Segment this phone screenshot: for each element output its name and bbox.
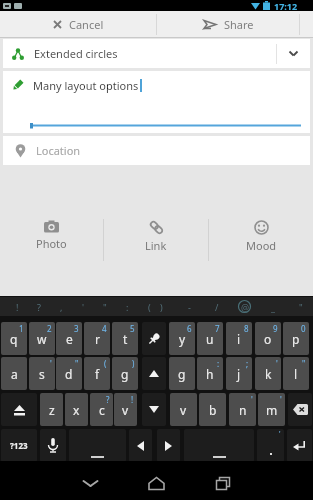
button[interactable]: ? xyxy=(31,299,47,314)
staticText: " xyxy=(75,358,79,369)
button[interactable]: k xyxy=(255,357,281,390)
button[interactable]: e xyxy=(56,322,82,355)
button[interactable]: Location xyxy=(3,136,310,165)
staticText: g xyxy=(178,366,186,382)
button[interactable]: d xyxy=(56,357,82,390)
staticText: d xyxy=(65,366,73,382)
button[interactable]: j xyxy=(226,357,252,390)
staticText: b xyxy=(209,402,217,418)
button[interactable]: " xyxy=(97,299,113,314)
staticText: v xyxy=(122,402,129,418)
button[interactable]: _ xyxy=(265,299,281,314)
button[interactable]: v xyxy=(170,393,197,426)
button[interactable]: Share xyxy=(157,11,299,38)
button[interactable]: ( xyxy=(141,299,157,314)
button[interactable]: s xyxy=(29,357,55,390)
staticText: k xyxy=(265,366,272,382)
button[interactable]: y xyxy=(169,322,195,355)
button[interactable]: Photo xyxy=(0,219,103,261)
button[interactable]: u xyxy=(197,322,223,355)
staticText: 9 xyxy=(273,323,278,334)
button[interactable]: g xyxy=(112,357,138,390)
button[interactable]: , xyxy=(53,299,69,314)
button[interactable]: m xyxy=(258,393,285,426)
staticText: " xyxy=(302,358,306,369)
button[interactable]: @ xyxy=(237,299,253,314)
staticText: f xyxy=(95,366,100,382)
button[interactable]: / xyxy=(209,299,225,314)
button[interactable]: f xyxy=(84,357,110,390)
staticText: ( xyxy=(104,358,107,369)
button[interactable]: : xyxy=(119,299,135,314)
staticText: Cancel xyxy=(69,17,104,32)
button[interactable] xyxy=(184,429,254,462)
button[interactable]: a xyxy=(1,357,27,390)
button[interactable] xyxy=(142,393,166,426)
button[interactable]: x xyxy=(65,393,88,426)
staticText: / xyxy=(215,301,219,313)
staticText: n xyxy=(239,402,247,418)
button[interactable]: Many layout options xyxy=(3,71,310,133)
button[interactable] xyxy=(140,469,172,497)
button[interactable]: o xyxy=(255,322,281,355)
staticText: 2 xyxy=(47,323,52,334)
button[interactable]: h xyxy=(197,357,223,390)
button[interactable]: q xyxy=(1,322,27,355)
button[interactable] xyxy=(207,469,239,497)
button[interactable]: Link xyxy=(104,219,208,261)
staticText: " xyxy=(299,301,303,313)
button[interactable] xyxy=(40,429,66,462)
staticText: 1 xyxy=(19,323,24,334)
button[interactable] xyxy=(129,429,152,462)
staticText: o xyxy=(264,331,272,347)
button[interactable]: ) xyxy=(153,299,169,314)
staticText: j xyxy=(237,366,241,382)
staticText: 6 xyxy=(187,323,192,334)
button[interactable] xyxy=(157,429,180,462)
button[interactable]: ' xyxy=(75,299,91,314)
staticText: s xyxy=(39,366,45,382)
button[interactable]: v xyxy=(114,393,137,426)
staticText: q xyxy=(10,331,18,347)
button[interactable]: b xyxy=(199,393,226,426)
button[interactable]: - xyxy=(181,299,197,314)
button[interactable] xyxy=(142,357,166,390)
button[interactable]: i xyxy=(226,322,252,355)
button[interactable] xyxy=(142,322,166,355)
button[interactable]: w xyxy=(29,322,55,355)
staticText: Mood xyxy=(246,238,277,253)
staticText: c xyxy=(99,402,105,418)
staticText: ' xyxy=(279,429,281,439)
button[interactable]: g xyxy=(169,357,195,390)
staticText: v xyxy=(180,402,187,418)
staticText: " xyxy=(103,301,107,313)
button[interactable]: ' xyxy=(257,429,284,462)
button[interactable]: " xyxy=(293,299,309,314)
button[interactable] xyxy=(74,469,106,497)
staticText: ? xyxy=(37,301,41,313)
button[interactable] xyxy=(288,393,312,426)
button[interactable]: l xyxy=(283,357,309,390)
button[interactable]: p xyxy=(283,322,309,355)
button[interactable]: r xyxy=(84,322,110,355)
staticText: a xyxy=(11,366,18,382)
staticText: ! xyxy=(16,301,19,313)
button[interactable]: ?123 xyxy=(1,429,37,462)
button[interactable]: z xyxy=(40,393,63,426)
button[interactable]: Extended circles xyxy=(3,39,310,68)
staticText: Location xyxy=(36,143,81,158)
staticText: ' xyxy=(251,394,253,405)
button[interactable] xyxy=(1,393,37,426)
button[interactable] xyxy=(69,429,126,462)
staticText: Link xyxy=(145,238,167,253)
button[interactable]: t xyxy=(112,322,138,355)
button[interactable]: c xyxy=(90,393,113,426)
button[interactable]: n xyxy=(229,393,256,426)
button[interactable]: Cancel xyxy=(0,11,156,38)
button[interactable] xyxy=(287,429,312,462)
staticText: _ xyxy=(271,301,275,313)
staticText: ! xyxy=(131,394,134,405)
button[interactable]: Mood xyxy=(209,219,313,261)
staticText: g xyxy=(121,366,129,382)
button[interactable]: ! xyxy=(9,299,25,314)
